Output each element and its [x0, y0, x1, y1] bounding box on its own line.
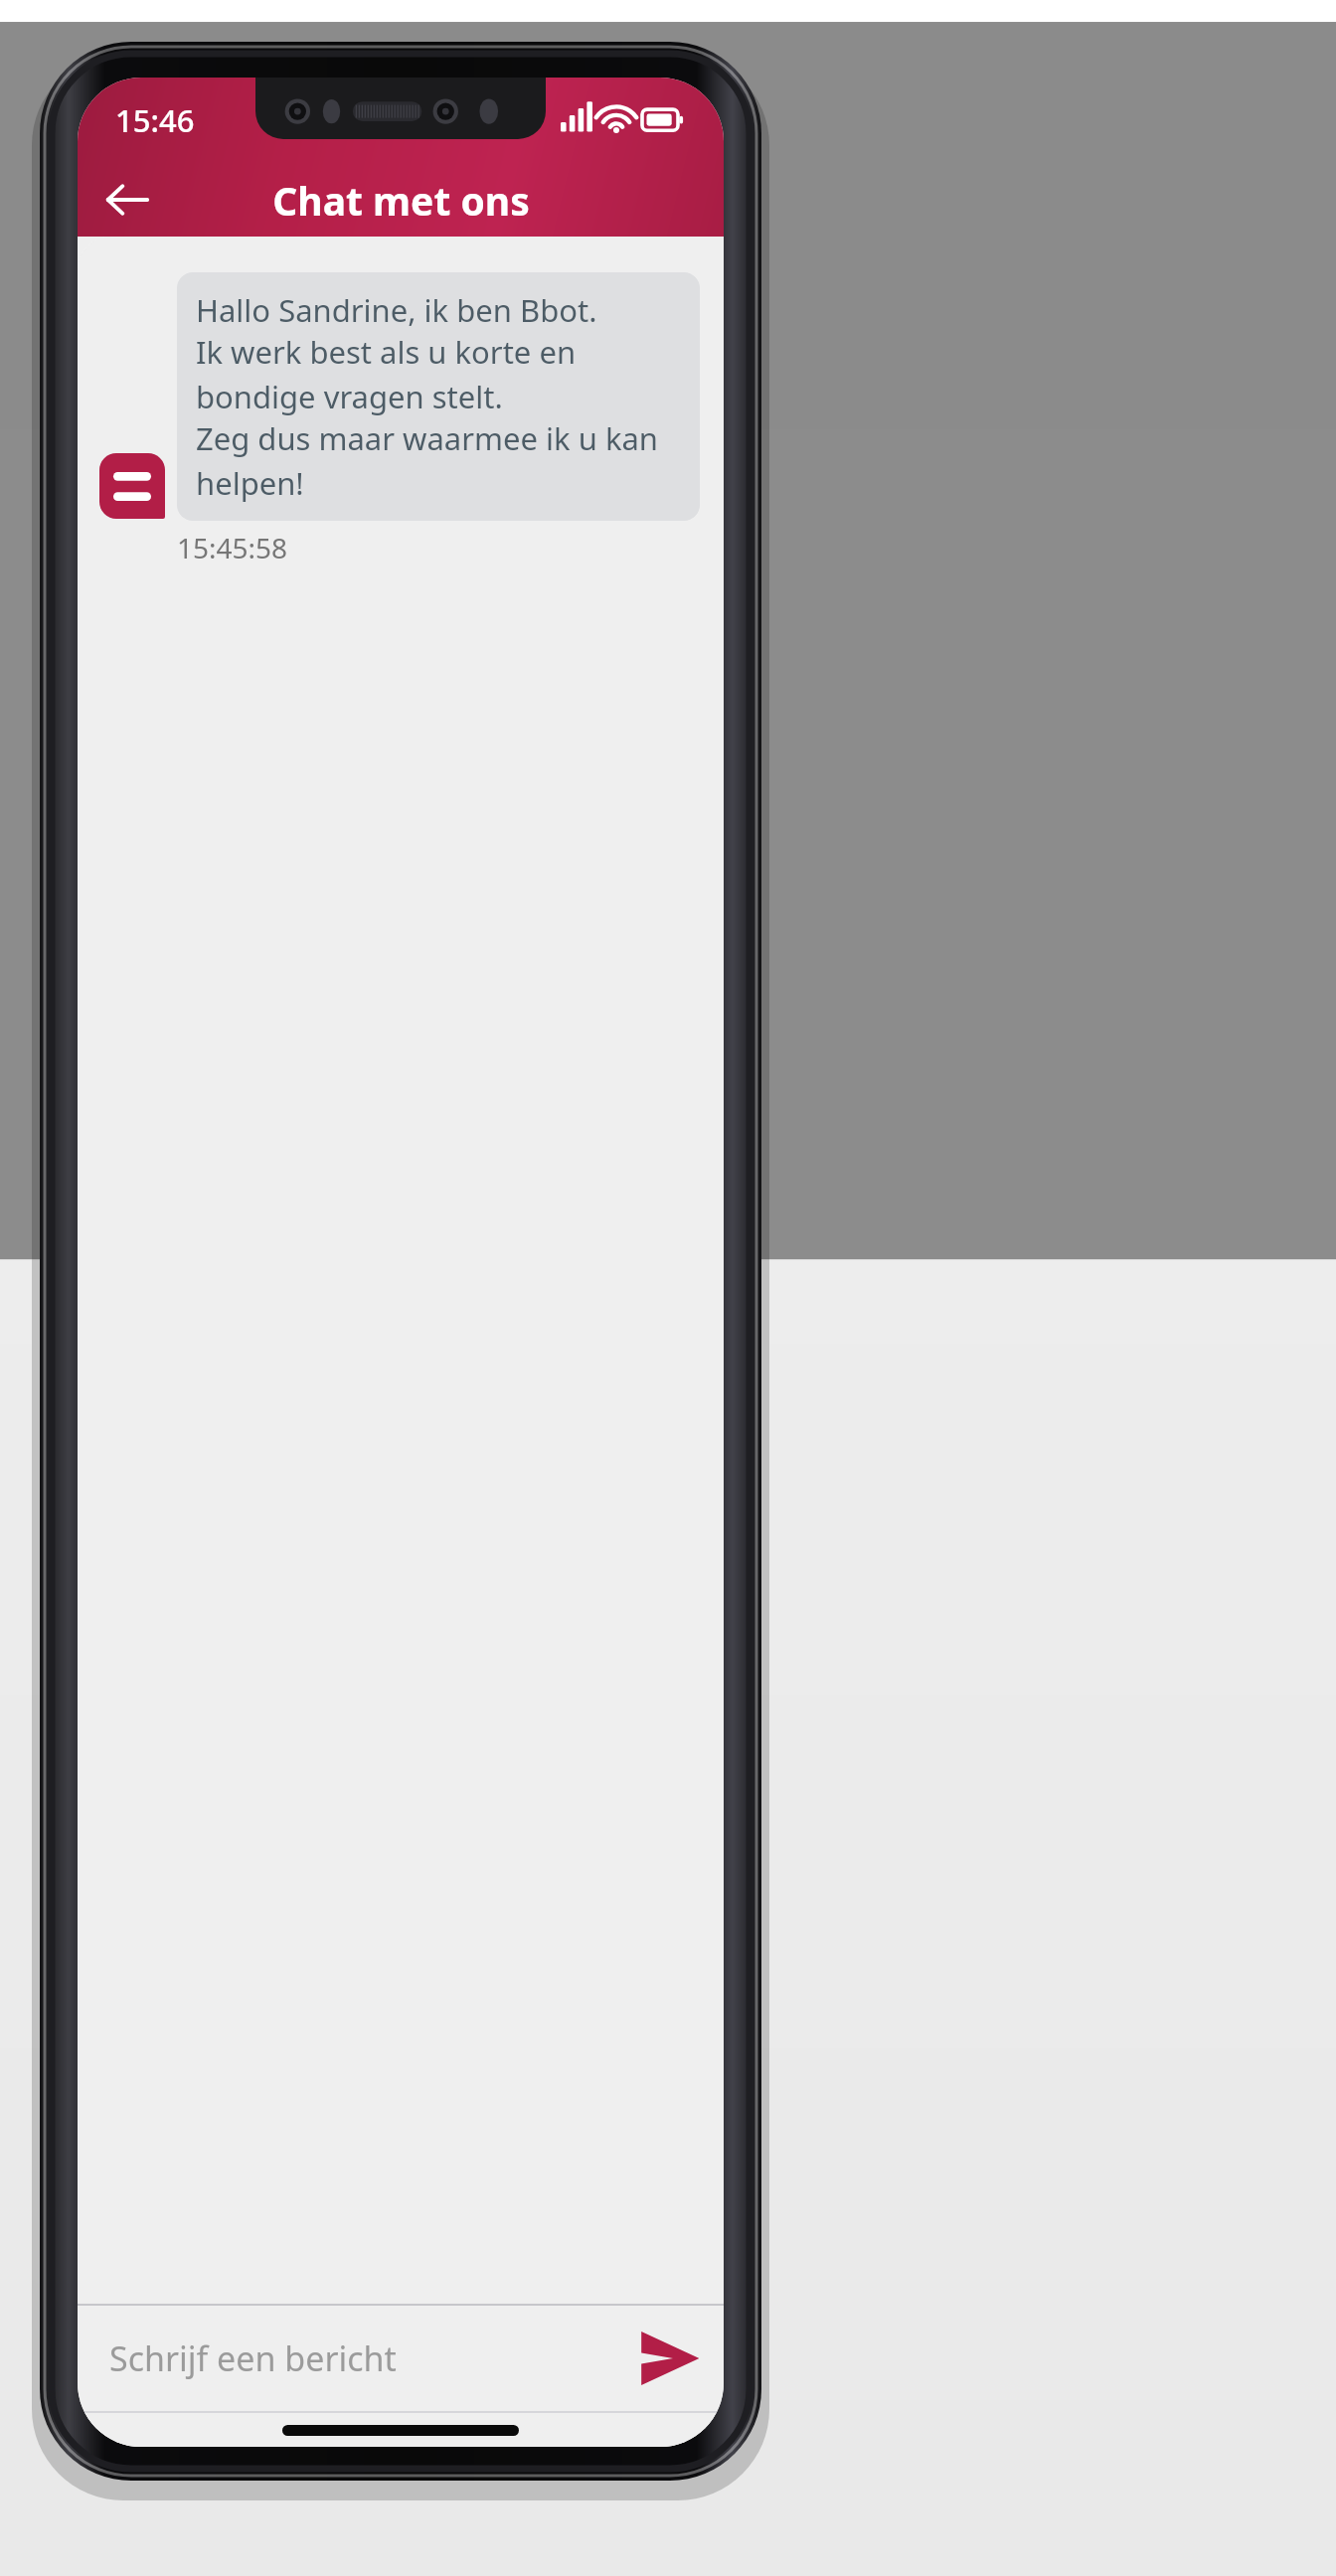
button[interactable]: Hallo Sandrine, ik ben Bbot. [177, 272, 700, 521]
button[interactable]: Schrijf een bericht [78, 2306, 620, 2411]
button[interactable]: Send [620, 2309, 720, 2408]
staticText: Zeg dus maar waarmee ik u kan helpen! [196, 417, 681, 504]
staticText: 15:46 [115, 99, 195, 141]
staticText: Hallo Sandrine, ik ben Bbot. [196, 289, 597, 331]
staticText: Chat met ons [272, 174, 530, 227]
button[interactable]: Back [87, 163, 167, 237]
staticText: Schrijf een bericht [109, 2335, 397, 2381]
staticText: Ik werk best als u korte en bondige vrag… [196, 331, 681, 417]
staticText: 15:45:58 [177, 529, 288, 566]
